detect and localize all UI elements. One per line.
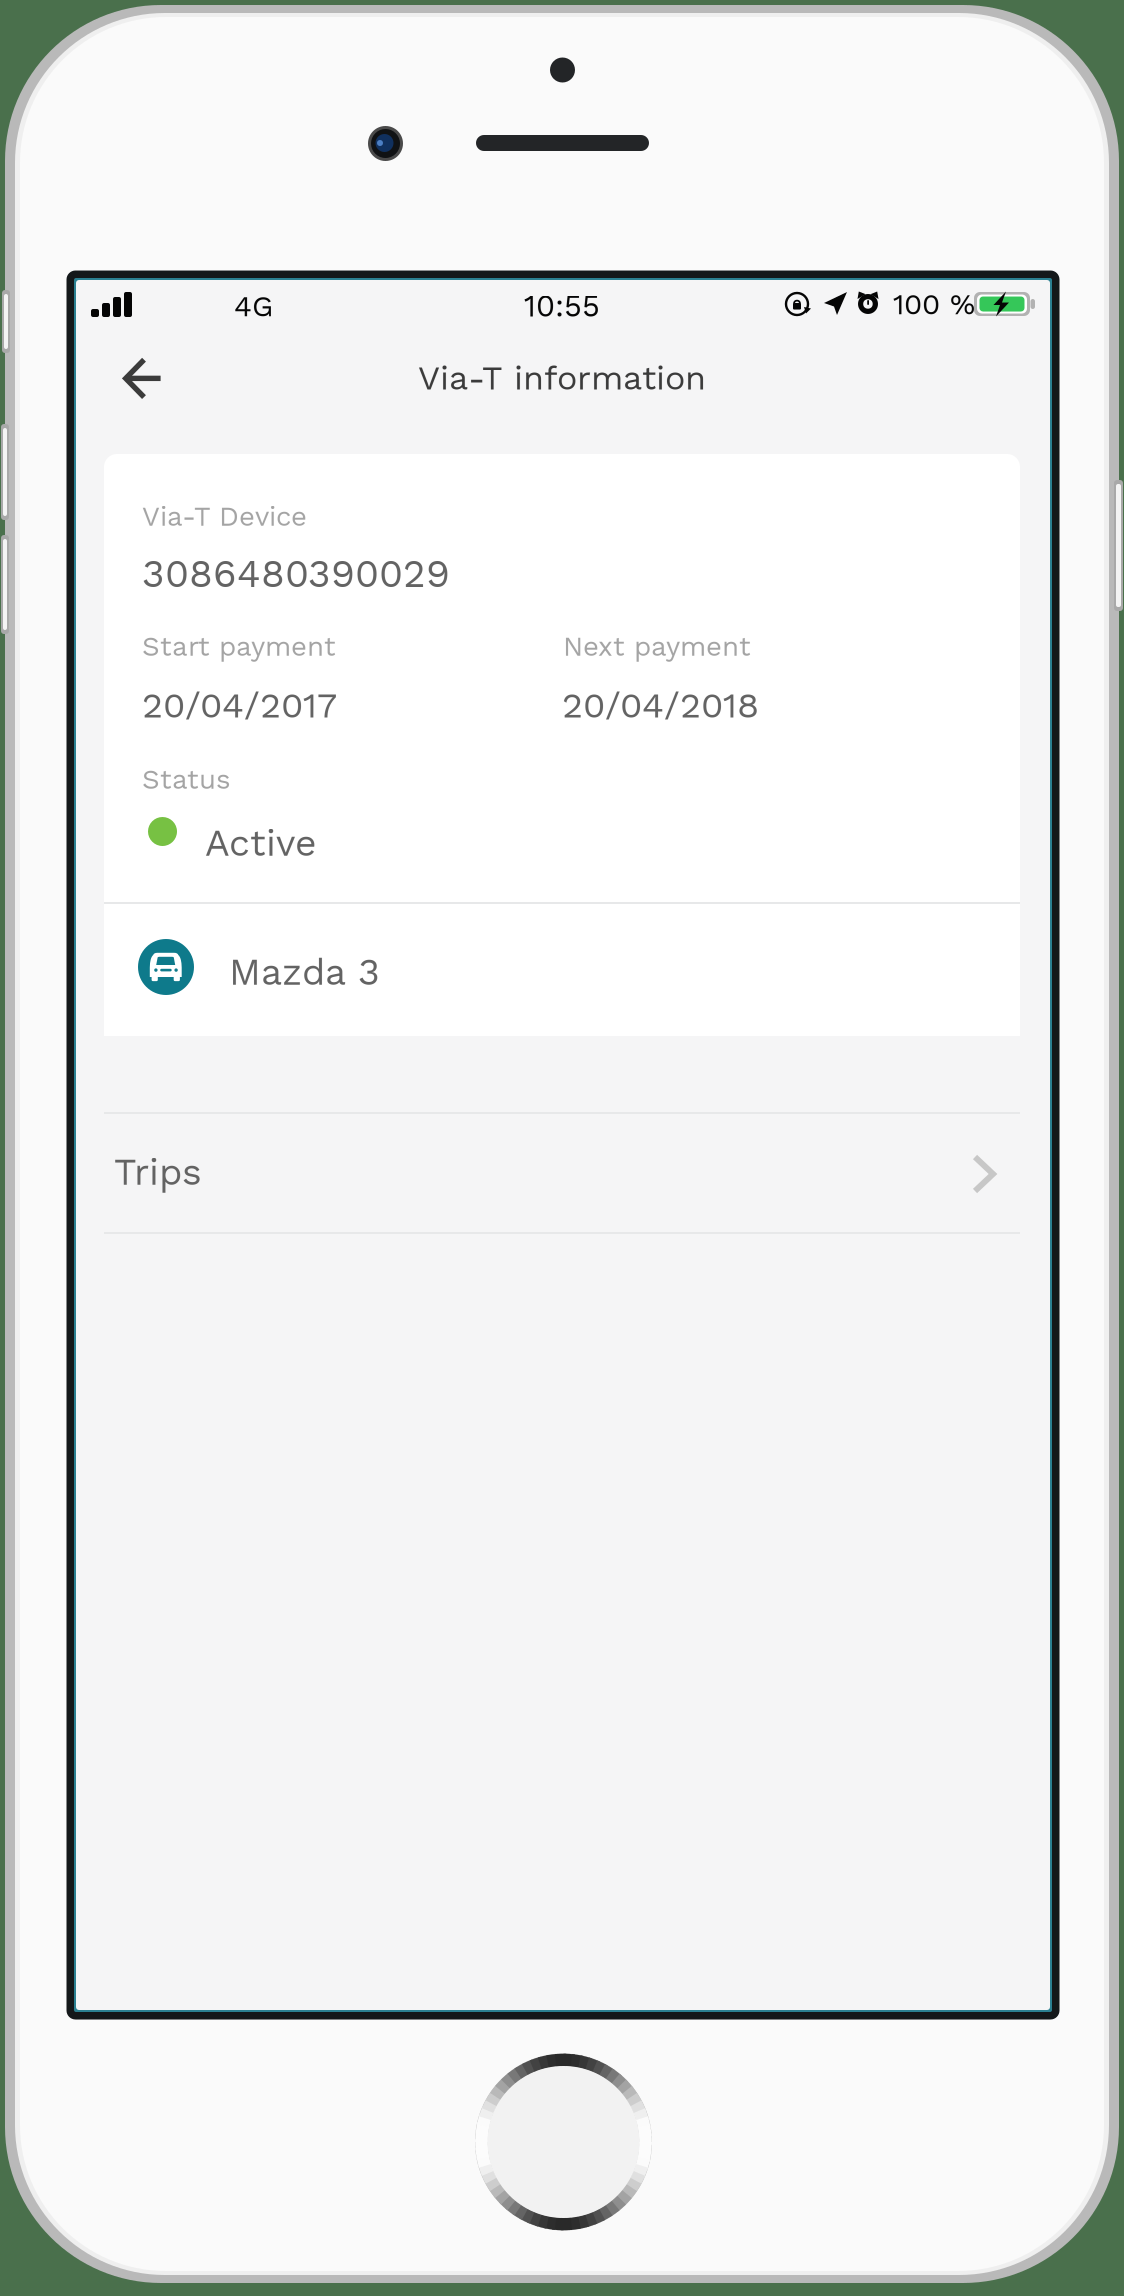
staticText: 4G bbox=[234, 289, 273, 323]
staticText: 10:55 bbox=[524, 288, 600, 324]
staticText: 3086480390029 bbox=[142, 551, 450, 596]
staticText: Active bbox=[205, 821, 317, 865]
staticText: Status bbox=[142, 763, 231, 795]
staticText: 20/04/2017 bbox=[142, 684, 337, 726]
staticText: 100 % bbox=[893, 287, 975, 321]
staticText: Trips bbox=[114, 1150, 202, 1194]
staticText: Via-T Device bbox=[142, 500, 307, 532]
staticText: Via-T information bbox=[418, 358, 706, 398]
button[interactable]: Back bbox=[98, 336, 188, 422]
button[interactable]: Mazda 3 bbox=[104, 905, 1020, 1036]
button[interactable]: Trips bbox=[104, 1114, 1020, 1232]
staticText: Mazda 3 bbox=[229, 950, 380, 994]
staticText: Start payment bbox=[142, 630, 336, 662]
staticText: Next payment bbox=[563, 630, 751, 662]
staticText: 20/04/2018 bbox=[562, 684, 759, 726]
